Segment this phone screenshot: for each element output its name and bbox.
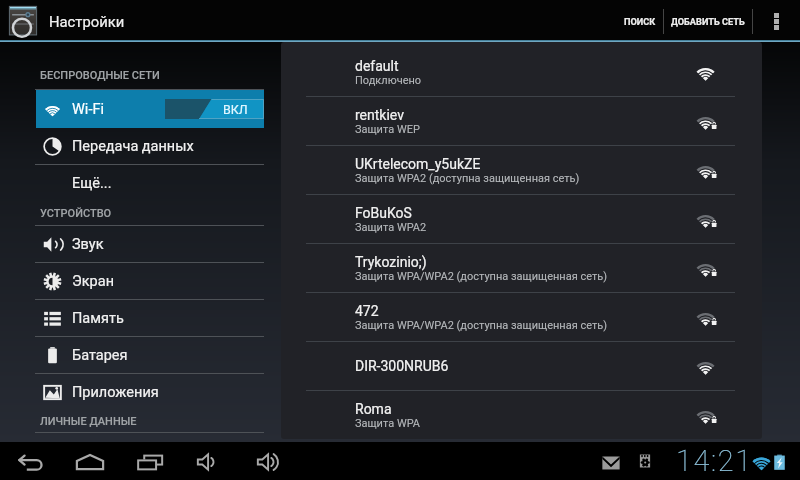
button[interactable]: Ещё...	[36, 165, 264, 201]
staticText: UKrtelecom_y5ukZE	[355, 156, 481, 172]
staticText: Защита WEP	[355, 123, 420, 136]
staticText: Защита WPA2 (доступна защищенная сеть)	[355, 172, 580, 185]
button[interactable]: 472	[281, 293, 762, 341]
staticText: Экран	[72, 273, 115, 290]
button[interactable]: Экран	[36, 263, 264, 299]
staticText: Батарея	[72, 347, 128, 364]
staticText: ВКЛ	[223, 102, 248, 117]
button[interactable]: UKrtelecom_y5ukZE	[281, 146, 762, 194]
button[interactable]: default	[281, 48, 762, 96]
button[interactable]: Back	[0, 442, 60, 480]
staticText: ПОИСК	[624, 16, 656, 27]
staticText: УСТРОЙСТВО	[40, 207, 112, 220]
button[interactable]: Настройки	[0, 0, 133, 42]
button[interactable]: Приложения	[36, 374, 264, 410]
button[interactable]: ПОИСК	[617, 0, 663, 42]
staticText: Передача данных	[72, 138, 194, 155]
staticText: ЛИЧНЫЕ ДАННЫЕ	[40, 415, 137, 428]
staticText: БЕСПРОВОДНЫЕ СЕТИ	[40, 69, 160, 82]
staticText: Ещё...	[72, 175, 112, 192]
staticText: Приложения	[72, 384, 159, 401]
button[interactable]: Память	[36, 300, 264, 336]
staticText: Защита WPA	[355, 417, 421, 430]
staticText: Roma	[355, 401, 392, 417]
staticText: 14:21	[676, 444, 753, 478]
button[interactable]: FoBuKoS	[281, 195, 762, 243]
staticText: default	[355, 58, 399, 74]
button[interactable]: Home	[60, 442, 120, 480]
button[interactable]: Trykozinio;)	[281, 244, 762, 292]
staticText: DIR-300NRUB6	[355, 358, 449, 374]
button[interactable]: Wi-Fi on	[165, 99, 264, 119]
staticText: Подключено	[355, 74, 422, 87]
button[interactable]: Volume up	[240, 442, 300, 480]
staticText: Память	[72, 310, 124, 327]
button[interactable]: rentkiev	[281, 97, 762, 145]
staticText: Защита WPA/WPA2 (доступна защищенная сет…	[355, 319, 608, 332]
button[interactable]: ДОБАВИТЬ СЕТЬ	[664, 0, 752, 42]
staticText: Настройки	[49, 13, 125, 30]
button[interactable]: More options	[753, 0, 800, 42]
staticText: Защита WPA2	[355, 221, 427, 234]
staticText: 472	[355, 303, 379, 319]
button[interactable]: Volume down	[180, 442, 240, 480]
staticText: Защита WPA/WPA2 (доступна защищенная сет…	[355, 270, 608, 283]
staticText: ДОБАВИТЬ СЕТЬ	[671, 16, 745, 27]
button[interactable]: Звук	[36, 226, 264, 262]
button[interactable]: Батарея	[36, 337, 264, 373]
button[interactable]: Wi-Fi	[36, 90, 264, 128]
staticText: Звук	[72, 236, 104, 253]
button[interactable]: Recent apps	[120, 442, 180, 480]
staticText: Trykozinio;)	[355, 254, 427, 270]
staticText: rentkiev	[355, 107, 404, 123]
button[interactable]: DIR-300NRUB6	[281, 342, 762, 390]
staticText: FoBuKoS	[355, 205, 412, 221]
button[interactable]: Передача данных	[36, 128, 264, 164]
staticText: Wi-Fi	[72, 101, 104, 118]
button[interactable]: Roma	[281, 391, 762, 439]
